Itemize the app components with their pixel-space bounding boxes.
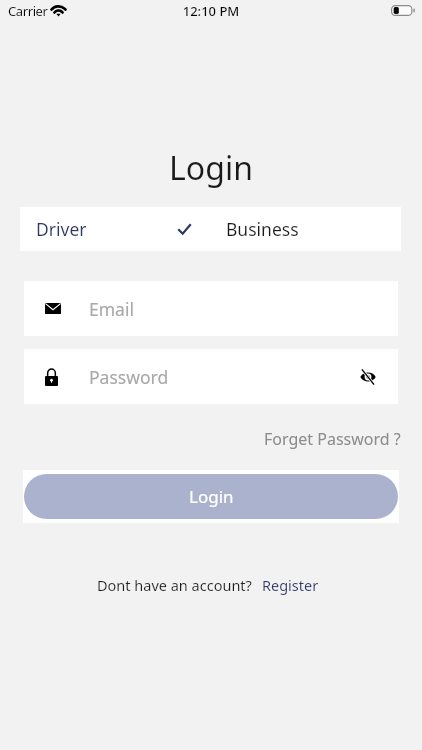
button[interactable]: Password (24, 349, 398, 404)
button[interactable]: Forget Password ? (258, 423, 407, 455)
button[interactable]: Business (210, 207, 401, 251)
staticText: Email (89, 297, 134, 321)
button[interactable]: Show password (347, 356, 389, 398)
button[interactable]: Register (262, 575, 319, 595)
staticText: 12:10 PM (0, 2, 422, 20)
button[interactable]: Driver (20, 207, 210, 251)
staticText: Carrier (8, 2, 48, 20)
button[interactable]: Email (24, 281, 398, 336)
staticText: Register (262, 575, 319, 595)
button[interactable]: Login (24, 474, 398, 519)
staticText: Dont have an account? (97, 575, 252, 595)
staticText: Password (89, 365, 347, 389)
staticText: Forget Password ? (264, 428, 401, 450)
staticText: Business (226, 217, 299, 241)
staticText: Login (189, 485, 234, 508)
staticText: Login (0, 146, 422, 190)
staticText: Driver (36, 217, 87, 241)
